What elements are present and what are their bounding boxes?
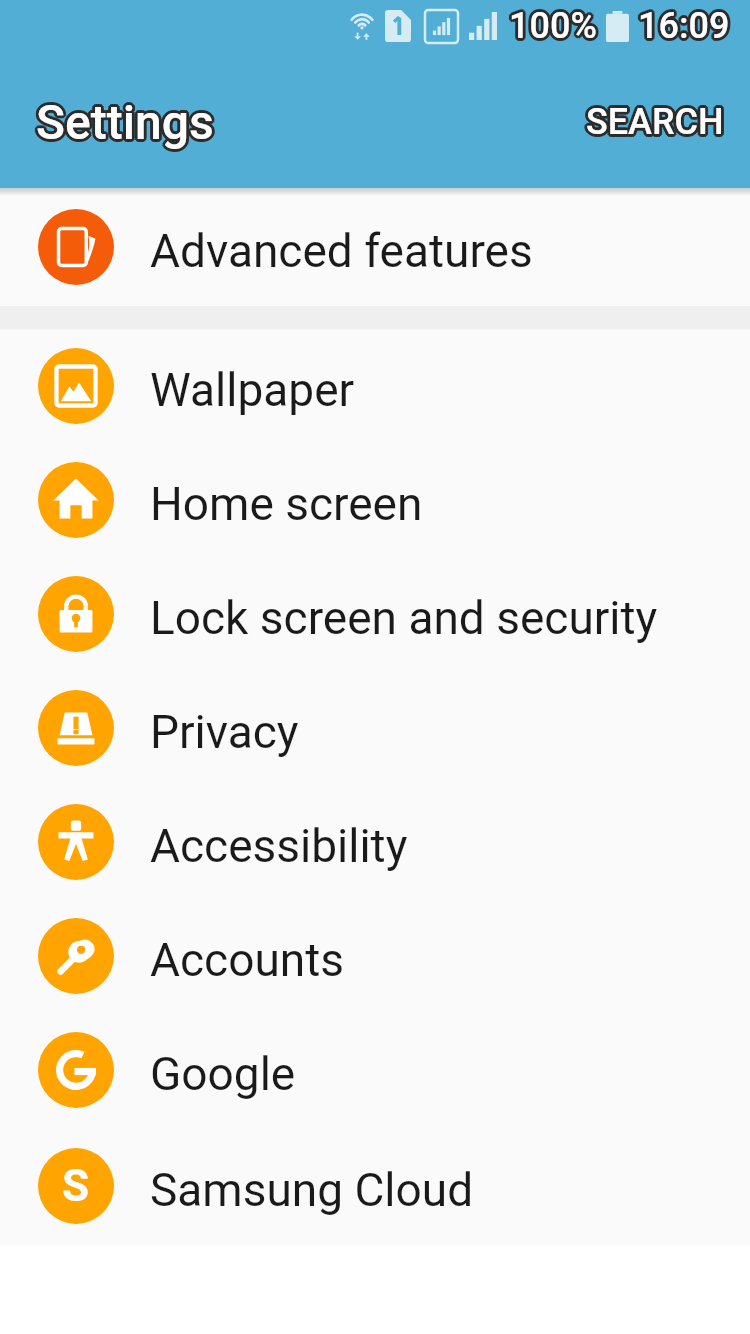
staticText: Settings: [34, 94, 212, 150]
staticText: Settings: [38, 96, 216, 152]
staticText: Settings: [33, 95, 211, 151]
staticText: Settings: [39, 95, 217, 151]
staticText: S: [62, 1160, 90, 1212]
button[interactable]: SEARCH: [560, 87, 750, 157]
other: Mobile signal SIM 1: [425, 10, 458, 43]
staticText: 100%: [509, 3, 597, 45]
staticText: 100%: [511, 3, 599, 45]
staticText: SEARCH: [585, 98, 723, 140]
staticText: SEARCH: [584, 101, 722, 143]
staticText: Settings: [37, 91, 215, 147]
staticText: Google: [150, 1047, 296, 1101]
staticText: 16:09: [637, 8, 729, 50]
staticText: Settings: [38, 94, 216, 150]
staticText: 100%: [510, 2, 598, 44]
staticText: 16:09: [636, 7, 728, 49]
staticText: Accessibility: [150, 819, 408, 873]
staticText: 100%: [508, 2, 596, 44]
staticText: 100%: [506, 4, 594, 46]
staticText: 16:09: [638, 5, 730, 47]
other: Battery full: [606, 11, 629, 42]
staticText: 100%: [507, 3, 595, 45]
staticText: 16:09: [638, 3, 730, 45]
staticText: Settings: [38, 92, 216, 148]
staticText: Settings: [34, 92, 212, 148]
staticText: Settings: [33, 93, 211, 149]
staticText: Lock screen and security: [150, 591, 658, 645]
button[interactable]: Advanced features: [0, 188, 750, 306]
staticText: SEARCH: [585, 104, 723, 146]
staticText: Privacy: [150, 705, 299, 759]
staticText: SEARCH: [588, 101, 726, 143]
staticText: 16:09: [636, 3, 728, 45]
staticText: 16:09: [641, 4, 733, 46]
staticText: 100%: [507, 5, 595, 47]
staticText: SEARCH: [588, 99, 726, 141]
staticText: Home screen: [150, 477, 423, 531]
staticText: Accounts: [150, 933, 344, 987]
staticText: 100%: [510, 8, 598, 50]
staticText: 16:09: [639, 2, 731, 44]
staticText: 16:09: [640, 7, 732, 49]
button[interactable]: Google: [0, 1013, 750, 1127]
staticText: SEARCH: [583, 102, 721, 144]
button[interactable]: Lock screen and security: [0, 557, 750, 671]
staticText: 100%: [508, 8, 596, 50]
button[interactable]: Privacy: [0, 671, 750, 785]
staticText: 16:09: [635, 4, 727, 46]
staticText: Advanced features: [150, 224, 533, 278]
staticText: Settings: [36, 96, 214, 152]
other: Wi-Fi connected: [349, 11, 375, 41]
staticText: Settings: [36, 94, 214, 150]
button[interactable]: Home screen: [0, 443, 750, 557]
staticText: Settings: [35, 97, 213, 153]
staticText: SEARCH: [589, 102, 727, 144]
staticText: 16:09: [635, 6, 727, 48]
staticText: SEARCH: [587, 98, 725, 140]
staticText: 100%: [507, 7, 595, 49]
staticText: SEARCH: [583, 100, 721, 142]
staticText: SEARCH: [589, 100, 727, 142]
staticText: Settings: [37, 97, 215, 153]
staticText: Settings: [34, 96, 212, 152]
staticText: 100%: [512, 6, 600, 48]
staticText: 16:09: [640, 3, 732, 45]
staticText: 100%: [509, 7, 597, 49]
button[interactable]: S: [0, 1127, 750, 1245]
staticText: 100%: [512, 4, 600, 46]
staticText: Samsung Cloud: [150, 1163, 474, 1217]
staticText: 16:09: [639, 8, 731, 50]
staticText: Settings: [35, 91, 213, 147]
staticText: SEARCH: [586, 101, 724, 143]
button[interactable]: Accounts: [0, 899, 750, 1013]
staticText: 16:09: [638, 7, 730, 49]
staticText: 16:09: [636, 5, 728, 47]
staticText: 16:09: [637, 2, 729, 44]
button[interactable]: Wallpaper: [0, 329, 750, 443]
staticText: 16:09: [641, 6, 733, 48]
staticText: 100%: [509, 5, 597, 47]
other: Mobile signal SIM 2: [469, 12, 497, 40]
staticText: SEARCH: [587, 104, 725, 146]
staticText: 100%: [511, 7, 599, 49]
staticText: SEARCH: [584, 103, 722, 145]
staticText: 100%: [511, 5, 599, 47]
staticText: SEARCH: [586, 99, 724, 141]
button[interactable]: Accessibility: [0, 785, 750, 899]
other: SIM card 1: [385, 10, 411, 42]
staticText: 16:09: [640, 5, 732, 47]
staticText: SEARCH: [584, 99, 722, 141]
staticText: Settings: [39, 93, 217, 149]
staticText: Settings: [36, 92, 214, 148]
staticText: SEARCH: [588, 103, 726, 145]
staticText: Wallpaper: [150, 363, 355, 417]
staticText: SEARCH: [586, 103, 724, 145]
staticText: 100%: [506, 6, 594, 48]
